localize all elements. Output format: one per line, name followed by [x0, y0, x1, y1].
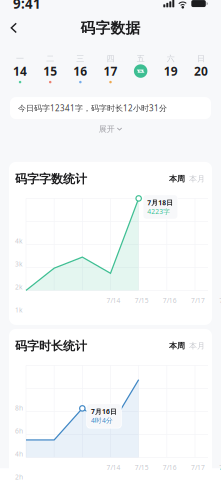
- button[interactable]: 返回: [3, 16, 25, 40]
- staticText: 16: [73, 63, 87, 79]
- button[interactable]: 一: [5, 54, 35, 86]
- button[interactable]: 日: [186, 54, 216, 86]
- staticText: 三: [76, 54, 84, 63]
- staticText: 6h: [15, 426, 23, 435]
- staticText: 本周: [169, 174, 185, 184]
- staticText: 1k: [15, 305, 23, 314]
- staticText: 19: [164, 63, 178, 79]
- button[interactable]: 四: [95, 54, 125, 86]
- staticText: 本周: [169, 341, 185, 351]
- staticText: 2h: [15, 472, 23, 480]
- staticText: 一: [16, 54, 24, 63]
- staticText: 4时4分: [91, 416, 113, 425]
- button[interactable]: 展开: [10, 119, 211, 139]
- staticText: 码字字数统计: [15, 171, 87, 186]
- staticText: 7/17: [191, 463, 205, 472]
- staticText: 17: [103, 63, 117, 79]
- staticText: 4223字: [147, 207, 170, 216]
- staticText: 7/16: [163, 463, 177, 472]
- staticText: 15: [43, 63, 57, 79]
- staticText: 20: [194, 63, 208, 79]
- staticText: 4k: [15, 236, 23, 245]
- button[interactable]: 本月: [187, 172, 207, 186]
- staticText: 本月: [189, 174, 205, 184]
- staticText: 五: [137, 54, 145, 63]
- staticText: 码字数据: [80, 19, 140, 37]
- staticText: 14: [13, 63, 27, 79]
- button[interactable]: 本月: [187, 339, 207, 353]
- staticText: 7/14: [106, 296, 120, 305]
- staticText: 3k: [15, 259, 23, 268]
- staticText: 四: [106, 54, 114, 63]
- button[interactable]: 六: [156, 54, 186, 86]
- staticText: 日: [197, 54, 205, 63]
- button[interactable]: 五: [126, 54, 156, 86]
- button[interactable]: 本周: [167, 339, 187, 353]
- staticText: 4h: [15, 449, 23, 458]
- staticText: 码字时长统计: [15, 338, 87, 353]
- button[interactable]: 二: [35, 54, 65, 86]
- staticText: 二: [46, 54, 54, 63]
- staticText: 7/17: [191, 296, 205, 305]
- staticText: 7/18: [219, 463, 221, 472]
- staticText: 7/15: [135, 463, 149, 472]
- staticText: 7月16日: [91, 407, 117, 416]
- button[interactable]: 本周: [167, 172, 187, 186]
- staticText: 7/16: [163, 296, 177, 305]
- staticText: 7月18日: [147, 198, 173, 207]
- staticText: 7/14: [106, 463, 120, 472]
- staticText: 8h: [15, 403, 23, 412]
- staticText: 六: [167, 54, 175, 63]
- staticText: 2k: [15, 282, 23, 291]
- staticText: 展开: [99, 124, 115, 134]
- staticText: 7/18: [219, 296, 221, 305]
- staticText: 9:41: [13, 0, 41, 12]
- staticText: 7/15: [135, 296, 149, 305]
- staticText: 本月: [189, 341, 205, 351]
- button[interactable]: 三: [65, 54, 95, 86]
- staticText: 今日码字12341字，码字时长12小时31分: [18, 103, 167, 113]
